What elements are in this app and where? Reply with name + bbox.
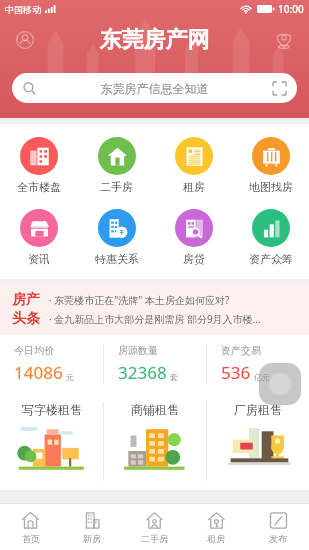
staticText: 东莞房产网 bbox=[40, 26, 269, 54]
staticText: 二手房 bbox=[141, 533, 168, 544]
staticText: 地图找房 bbox=[249, 180, 293, 194]
staticText: 房源数量 bbox=[118, 344, 158, 357]
staticText: 资产众筹 bbox=[249, 252, 293, 266]
button[interactable]: Assistive touch bbox=[259, 363, 301, 405]
button[interactable]: 今日均价 bbox=[0, 335, 103, 393]
staticText: 写字楼租售 bbox=[22, 402, 82, 417]
button[interactable]: 厂房租售 bbox=[207, 393, 309, 490]
staticText: 元 bbox=[66, 372, 74, 382]
button[interactable]: 房产 bbox=[0, 284, 309, 335]
button[interactable]: 资讯 bbox=[0, 205, 78, 270]
button[interactable]: 写字楼租售 bbox=[0, 393, 103, 490]
staticText: 中国移动 bbox=[5, 4, 41, 15]
staticText: 二手房 bbox=[100, 180, 133, 194]
button[interactable]: 资产众筹 bbox=[232, 205, 309, 270]
button[interactable]: Profile bbox=[10, 25, 40, 55]
staticText: 新房 bbox=[83, 533, 101, 544]
button[interactable]: 全市楼盘 bbox=[0, 133, 78, 198]
button[interactable]: Location bbox=[269, 25, 299, 55]
staticText: 10:00 bbox=[278, 2, 304, 16]
button[interactable]: 二手房 bbox=[123, 504, 185, 550]
staticText: 商铺租售 bbox=[131, 402, 179, 417]
button[interactable]: 资产交易 bbox=[207, 335, 309, 393]
button[interactable]: 特惠关系 bbox=[78, 205, 155, 270]
button[interactable]: 新房 bbox=[61, 504, 123, 550]
staticText: 14086 bbox=[14, 361, 63, 384]
staticText: 租房 bbox=[183, 180, 205, 194]
staticText: · 东莞楼市正在"洗牌" 本土房企如何应对? bbox=[49, 293, 230, 307]
staticText: 资产交易 bbox=[221, 344, 261, 357]
button[interactable]: 地图找房 bbox=[232, 133, 309, 198]
staticText: 全市楼盘 bbox=[17, 180, 61, 194]
staticText: 房贷 bbox=[183, 252, 205, 266]
staticText: 租房 bbox=[207, 533, 225, 544]
button[interactable]: 租房 bbox=[185, 504, 247, 550]
staticText: 房产 bbox=[12, 291, 40, 309]
staticText: 东莞房产信息全知道 bbox=[36, 81, 273, 96]
button[interactable]: 商铺租售 bbox=[104, 393, 206, 490]
button[interactable]: 二手房 bbox=[78, 133, 155, 198]
staticText: 套 bbox=[170, 372, 178, 382]
staticText: 32368 bbox=[118, 361, 167, 384]
button[interactable]: 房贷 bbox=[155, 205, 232, 270]
staticText: · 金九新品上市大部分是刚需房 部分9月入市楼... bbox=[49, 312, 261, 326]
button[interactable]: 首页 bbox=[0, 504, 61, 550]
button[interactable]: 租房 bbox=[155, 133, 232, 198]
staticText: 厂房租售 bbox=[234, 402, 282, 417]
staticText: 536 bbox=[221, 361, 251, 384]
staticText: 亿元 bbox=[254, 372, 270, 382]
staticText: 今日均价 bbox=[14, 344, 54, 357]
staticText: 特惠关系 bbox=[95, 252, 139, 266]
button[interactable]: 房源数量 bbox=[104, 335, 206, 393]
staticText: 首页 bbox=[22, 533, 40, 544]
staticText: 资讯 bbox=[28, 252, 50, 266]
staticText: 头条 bbox=[12, 310, 40, 328]
button[interactable]: 发布 bbox=[247, 504, 309, 550]
staticText: 发布 bbox=[269, 533, 287, 544]
button[interactable]: 东莞房产信息全知道 bbox=[12, 73, 297, 103]
